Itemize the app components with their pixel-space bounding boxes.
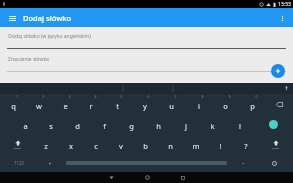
staticText: u — [169, 101, 174, 111]
staticText: 2 — [42, 94, 45, 99]
staticText: ? — [244, 141, 248, 151]
button[interactable]: j — [172, 114, 199, 134]
staticText: t — [116, 101, 119, 111]
staticText: 8 — [201, 94, 204, 99]
button[interactable]: Back — [93, 172, 129, 183]
button[interactable]: b — [133, 134, 158, 154]
button[interactable]: Voice input — [282, 84, 291, 93]
staticText: z — [44, 141, 48, 151]
button[interactable]: 8 — [185, 94, 212, 114]
staticText: 6 — [147, 94, 150, 99]
button[interactable]: Add word — [271, 64, 285, 78]
staticText: c — [94, 141, 98, 151]
staticText: e — [63, 101, 68, 111]
staticText: 7 — [174, 94, 177, 99]
button[interactable]: Recent apps — [165, 172, 201, 183]
button[interactable]: Period — [230, 154, 256, 172]
button[interactable]: 2 — [26, 94, 52, 114]
button[interactable]: d — [64, 114, 91, 134]
staticText: w — [36, 101, 42, 111]
staticText: , — [49, 158, 51, 166]
staticText: 1 — [16, 94, 19, 99]
staticText: . — [242, 158, 244, 166]
staticText: r — [89, 101, 93, 111]
button[interactable]: g — [118, 114, 145, 134]
staticText: s — [49, 121, 53, 131]
button[interactable]: Shift — [258, 134, 293, 154]
staticText: 5 — [120, 94, 123, 99]
staticText: l — [239, 121, 241, 131]
staticText: m — [192, 141, 200, 151]
staticText: h — [156, 121, 161, 131]
staticText: x — [69, 141, 73, 151]
button[interactable]: Symbols — [0, 154, 37, 172]
button[interactable]: 6 — [131, 94, 158, 114]
staticText: 3 — [68, 94, 71, 99]
staticText: y — [143, 101, 147, 111]
button[interactable]: Emoji — [256, 154, 293, 172]
button[interactable]: s — [38, 114, 64, 134]
button[interactable]: Shift — [0, 134, 34, 154]
button[interactable]: h — [145, 114, 172, 134]
button[interactable]: 0 — [239, 94, 266, 114]
button[interactable]: 7 — [158, 94, 185, 114]
staticText: 13:53 — [278, 1, 291, 8]
staticText: d — [75, 121, 80, 131]
staticText: n — [168, 141, 173, 151]
button[interactable]: l — [226, 114, 253, 134]
button[interactable]: m — [183, 134, 208, 154]
staticText: f — [103, 121, 106, 131]
staticText: p — [250, 101, 255, 111]
staticText: k — [210, 121, 215, 131]
button[interactable]: Enter — [253, 114, 293, 134]
button[interactable]: Home — [129, 172, 165, 183]
button[interactable]: Comma — [37, 154, 63, 172]
button[interactable]: z — [34, 134, 58, 154]
staticText: 9 — [228, 94, 231, 99]
button[interactable] — [7, 71, 286, 72]
staticText: j — [185, 121, 187, 131]
button[interactable]: k — [199, 114, 226, 134]
button[interactable]: c — [83, 134, 108, 154]
staticText: o — [223, 101, 228, 111]
button[interactable]: 9 — [212, 94, 239, 114]
button[interactable]: v — [108, 134, 133, 154]
button[interactable]: Open navigation drawer — [5, 11, 19, 25]
button[interactable]: x — [58, 134, 83, 154]
staticText: Znaczenie słówka — [8, 56, 49, 63]
button[interactable]: f — [91, 114, 118, 134]
staticText: a — [23, 121, 28, 131]
button[interactable]: Backspace — [266, 94, 293, 114]
staticText: Dodaj słówko — [23, 13, 71, 23]
staticText: g — [129, 121, 134, 131]
staticText: Dodaj słówko (w języku angielskim) — [8, 33, 91, 40]
button[interactable]: 5 — [104, 94, 131, 114]
button[interactable]: 3 — [52, 94, 78, 114]
staticText: i — [198, 101, 200, 111]
button[interactable]: ? — [233, 134, 258, 154]
staticText: b — [143, 141, 148, 151]
button[interactable]: 4 — [78, 94, 104, 114]
button[interactable]: ! — [208, 134, 233, 154]
staticText: v — [119, 141, 123, 151]
staticText: ?123 — [14, 160, 24, 166]
staticText: ! — [219, 141, 222, 151]
staticText: q — [11, 101, 16, 111]
staticText: 0 — [255, 94, 258, 99]
button[interactable]: More options — [274, 10, 290, 26]
staticText: 4 — [94, 94, 97, 99]
button[interactable]: 1 — [0, 94, 26, 114]
button[interactable]: a — [12, 114, 38, 134]
button[interactable]: n — [158, 134, 183, 154]
